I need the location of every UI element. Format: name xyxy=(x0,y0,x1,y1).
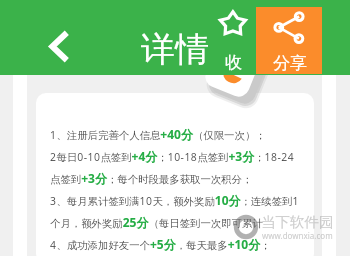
staticText: 分享 xyxy=(273,53,307,74)
staticText: 收 xyxy=(225,52,242,73)
staticText: 当下软件园 xyxy=(261,213,334,231)
button[interactable]: Back xyxy=(34,18,82,76)
button[interactable]: 详情 xyxy=(141,28,209,71)
staticText: 1、注册后完善个人信息+40分（仅限一次）； 2每日0-10点签到+4分；10-… xyxy=(50,126,316,252)
button[interactable]: 收 xyxy=(213,0,253,75)
button[interactable]: 分享 xyxy=(256,7,322,74)
staticText: www.downxia.com xyxy=(262,230,333,241)
